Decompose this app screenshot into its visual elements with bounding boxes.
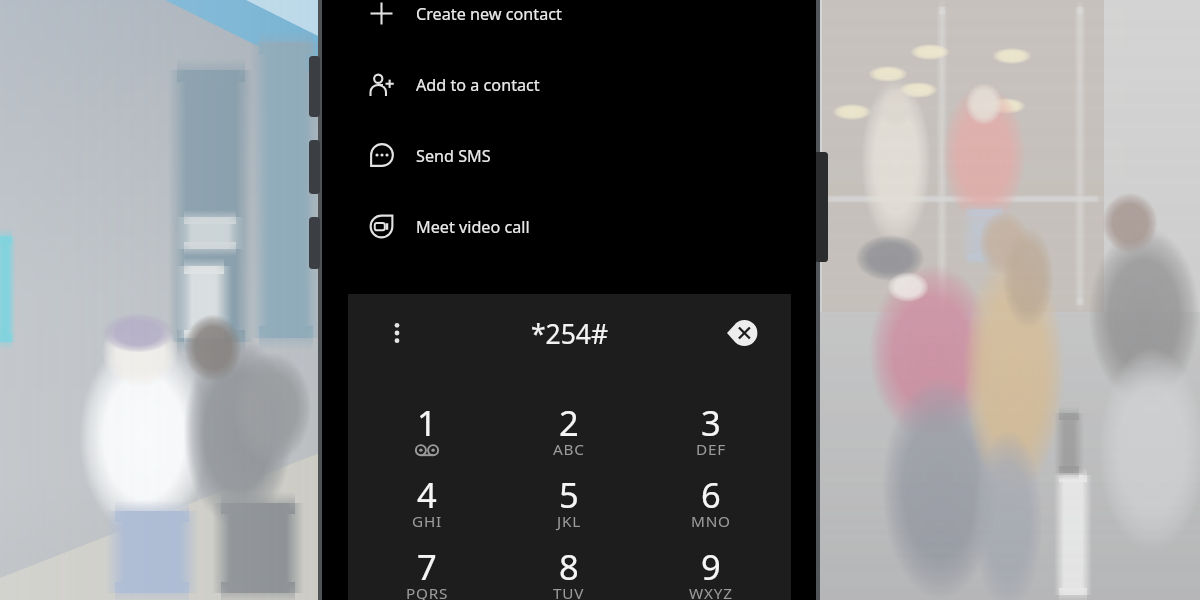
button[interactable]: More options: [376, 312, 418, 354]
button[interactable]: 3: [669, 399, 753, 465]
button[interactable]: Meet video call: [348, 191, 791, 262]
staticText: WXYZ: [689, 583, 733, 600]
staticText: 6: [701, 471, 721, 518]
staticText: Add to a contact: [416, 74, 540, 96]
button[interactable]: 9: [669, 543, 753, 600]
staticText: 5: [559, 471, 579, 518]
staticText: JKL: [557, 511, 582, 532]
staticText: PQRS: [406, 583, 449, 600]
staticText: 1: [417, 399, 437, 446]
staticText: ABC: [553, 439, 585, 460]
staticText: Create new contact: [416, 3, 562, 25]
button[interactable]: 8: [527, 543, 611, 600]
staticText: 4: [417, 471, 437, 518]
button[interactable]: 4: [385, 471, 469, 537]
staticText: Meet video call: [416, 216, 530, 238]
staticText: 2: [559, 399, 579, 446]
button[interactable]: 2: [527, 399, 611, 465]
staticText: 3: [701, 399, 721, 446]
staticText: Send SMS: [416, 145, 491, 167]
button[interactable]: 7: [385, 543, 469, 600]
staticText: 7: [417, 543, 437, 590]
staticText: 8: [559, 543, 579, 590]
button[interactable]: 1: [385, 399, 469, 465]
staticText: GHI: [412, 511, 443, 532]
staticText: TUV: [553, 583, 585, 600]
button[interactable]: 5: [527, 471, 611, 537]
staticText: 9: [701, 543, 721, 590]
button[interactable]: Backspace: [720, 312, 762, 354]
button[interactable]: Send SMS: [348, 120, 791, 191]
button[interactable]: Add to a contact: [348, 49, 791, 120]
button[interactable]: Create new contact: [348, 0, 791, 49]
staticText: *254#: [348, 316, 791, 352]
button[interactable]: 6: [669, 471, 753, 537]
staticText: DEF: [696, 439, 727, 460]
staticText: MNO: [691, 511, 731, 532]
